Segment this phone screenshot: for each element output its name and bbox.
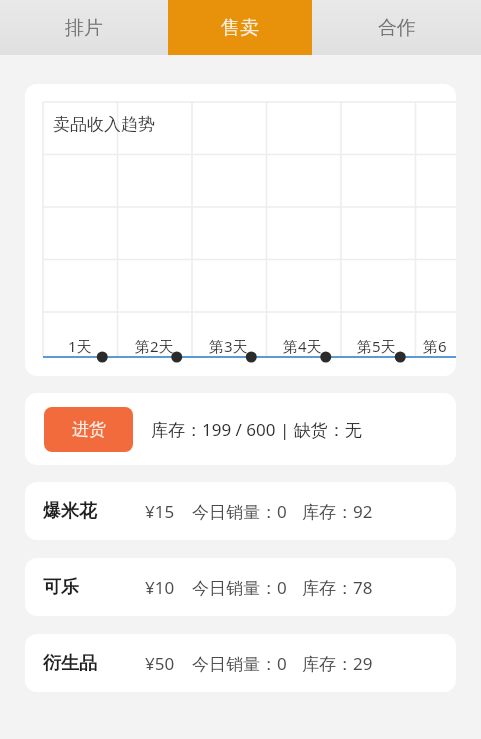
- staticText: 今日销量：0: [192, 500, 287, 523]
- button[interactable]: 卖品收入趋势: [25, 84, 456, 376]
- staticText: 第6: [423, 336, 447, 356]
- staticText: 第3天: [209, 336, 248, 356]
- staticText: 售卖: [221, 16, 259, 40]
- staticText: 可乐: [43, 576, 79, 599]
- staticText: 排片: [65, 16, 103, 40]
- staticText: 卖品收入趋势: [53, 114, 155, 135]
- button[interactable]: 售卖: [168, 0, 312, 55]
- staticText: 第2天: [135, 336, 174, 356]
- staticText: 进货: [72, 419, 106, 440]
- staticText: 第4天: [283, 336, 322, 356]
- button[interactable]: 衍生品: [25, 634, 456, 692]
- button[interactable]: 爆米花: [25, 482, 456, 540]
- button[interactable]: 排片: [0, 0, 168, 55]
- staticText: 爆米花: [43, 500, 97, 523]
- staticText: 合作: [378, 16, 416, 40]
- staticText: ¥50: [145, 652, 175, 675]
- staticText: 第5天: [357, 336, 396, 356]
- staticText: 衍生品: [43, 652, 97, 675]
- button[interactable]: 进货: [44, 407, 133, 452]
- staticText: 库存：29: [302, 652, 373, 675]
- staticText: 1天: [68, 336, 92, 356]
- staticText: 库存：92: [302, 500, 373, 523]
- staticText: 今日销量：0: [192, 652, 287, 675]
- button[interactable]: 可乐: [25, 558, 456, 616]
- staticText: 库存：78: [302, 576, 373, 599]
- staticText: 今日销量：0: [192, 576, 287, 599]
- staticText: ¥10: [145, 576, 175, 599]
- staticText: 库存：199 / 600 | 缺货：无: [151, 418, 362, 441]
- button[interactable]: 合作: [312, 0, 481, 55]
- staticText: ¥15: [145, 500, 175, 523]
